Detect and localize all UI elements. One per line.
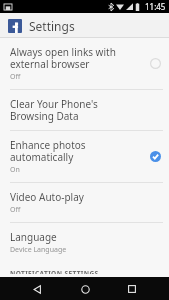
button[interactable]: Video Auto-play [0, 183, 169, 222]
button[interactable]: Language [0, 223, 169, 262]
staticText: NOTIFICATION SETTINGS [10, 269, 99, 274]
staticText: Language [10, 230, 57, 244]
staticText: Device Language [10, 245, 67, 255]
staticText: Settings [29, 18, 75, 34]
button[interactable]: Enhance photos automatically [0, 131, 169, 182]
staticText: On [10, 165, 20, 175]
staticText: Off [10, 205, 21, 215]
button[interactable]: Always open links with external browser [0, 38, 169, 89]
button[interactable]: Clear Your Phone's Browsing Data [0, 90, 169, 130]
button[interactable]: Back [26, 278, 48, 300]
staticText: Always open links with external browser [10, 45, 144, 71]
other: Disabled [150, 58, 161, 69]
staticText: Video Auto-play [10, 190, 84, 204]
staticText: Off [10, 72, 21, 82]
staticText: Clear Your Phone's Browsing Data [10, 97, 144, 123]
button[interactable]: Recent apps [121, 278, 143, 300]
staticText: 11:45 [145, 1, 166, 12]
button[interactable]: Home [74, 278, 96, 300]
other: Enabled [150, 151, 161, 162]
staticText: Enhance photos automatically [10, 138, 144, 164]
